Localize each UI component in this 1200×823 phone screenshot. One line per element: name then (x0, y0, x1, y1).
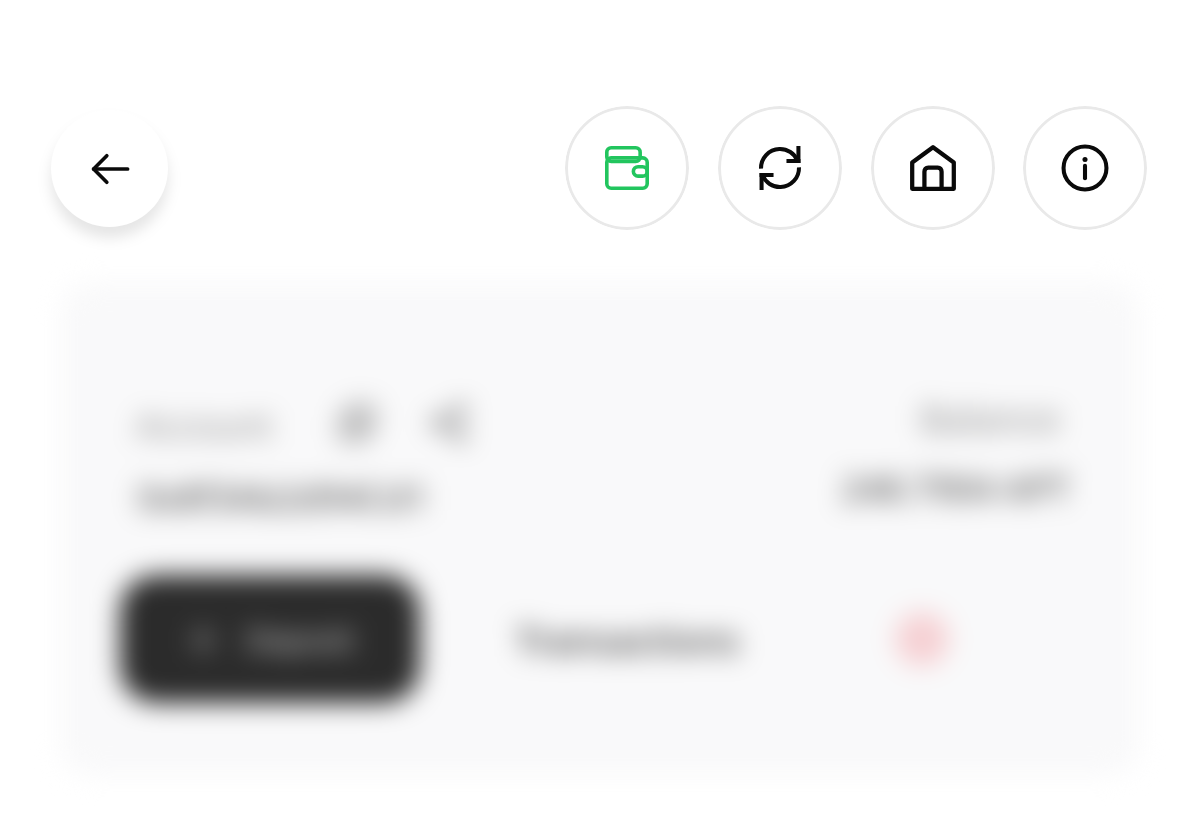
staticText: Balance (920, 392, 1071, 436)
staticText: 248.7904 APT (841, 464, 1071, 513)
button[interactable]: Info (1023, 106, 1147, 230)
staticText: Account (136, 401, 273, 445)
button[interactable]: Refresh (718, 106, 842, 230)
staticText: Deposit (246, 619, 355, 660)
button[interactable]: Home (871, 106, 995, 230)
button[interactable]: Deposit (120, 575, 420, 703)
staticText: Transactions (516, 614, 740, 664)
staticText: 0x8f3Ab2d94Cd1 (138, 473, 428, 522)
button[interactable]: Back (51, 110, 168, 227)
button[interactable]: Wallet (565, 106, 689, 230)
